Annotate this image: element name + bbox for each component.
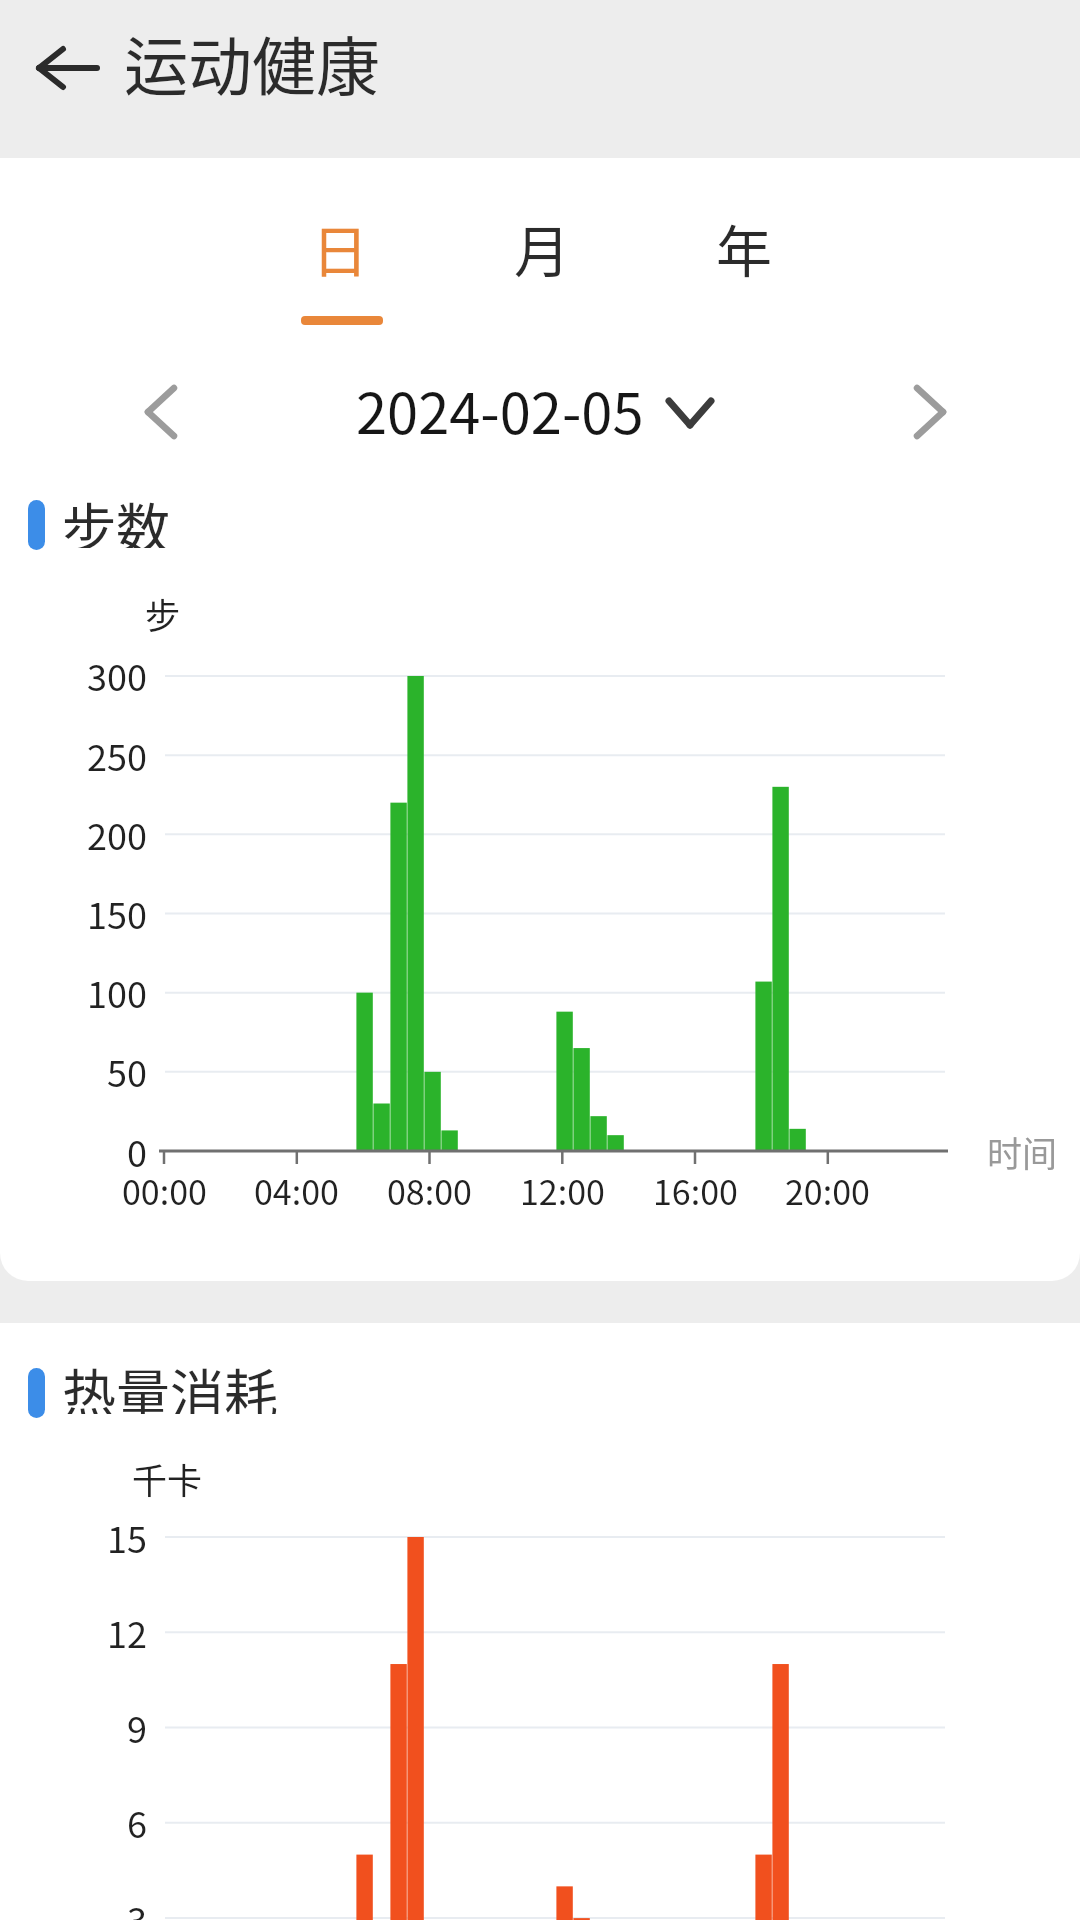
staticText: 月: [514, 207, 570, 288]
staticText: 热量消耗: [62, 1352, 278, 1414]
staticText: 20:00: [785, 1166, 870, 1215]
button[interactable]: [895, 377, 965, 447]
staticText: 0: [127, 1125, 147, 1177]
staticText: 08:00: [387, 1166, 472, 1215]
staticText: 50: [107, 1045, 147, 1097]
staticText: 步: [145, 588, 181, 639]
staticText: 300: [87, 649, 147, 701]
staticText: 250: [87, 729, 147, 781]
staticText: 步数: [62, 486, 170, 548]
staticText: 12: [107, 1606, 147, 1658]
staticText: 00:00: [122, 1166, 207, 1215]
staticText: 运动健康: [124, 16, 380, 109]
staticText: 16:00: [653, 1166, 738, 1215]
staticText: 12:00: [520, 1166, 605, 1215]
staticText: 100: [87, 966, 147, 1018]
staticText: 年: [716, 207, 772, 288]
staticText: 04:00: [254, 1166, 339, 1215]
staticText: 6: [127, 1796, 147, 1848]
staticText: 日: [312, 207, 368, 288]
button[interactable]: 年: [679, 184, 809, 310]
staticText: 3: [127, 1892, 147, 1920]
staticText: 千卡: [132, 1453, 203, 1504]
staticText: 200: [87, 808, 147, 860]
button[interactable]: 月: [477, 184, 607, 310]
button[interactable]: [18, 26, 116, 110]
staticText: 15: [107, 1511, 147, 1563]
button[interactable]: 日: [275, 184, 405, 310]
staticText: 150: [87, 887, 147, 939]
staticText: 时间: [987, 1126, 1058, 1177]
staticText: 9: [127, 1701, 147, 1753]
button[interactable]: 2024-02-05: [320, 367, 680, 451]
staticText: 2024-02-05: [356, 369, 644, 450]
button[interactable]: [126, 377, 196, 447]
